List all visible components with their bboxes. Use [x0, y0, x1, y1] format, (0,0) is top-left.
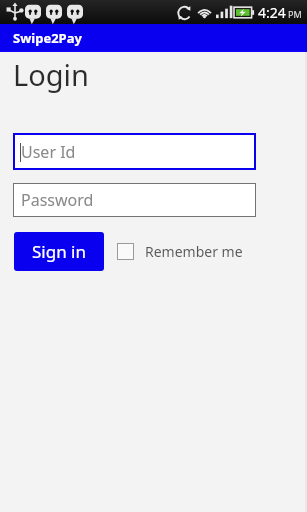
staticText: Swipe2Pay [13, 29, 82, 47]
staticText: User Id [21, 141, 76, 163]
staticText: Sign in [32, 240, 86, 263]
staticText: PM [288, 8, 302, 20]
staticText: 4:24 [258, 3, 286, 22]
staticText: Password [21, 189, 94, 211]
button[interactable]: Swipe2Pay [0, 24, 307, 51]
button[interactable]: Remember me [117, 242, 243, 261]
staticText: Remember me [145, 242, 243, 261]
button[interactable]: Sign in [14, 232, 104, 271]
staticText: Login [13, 55, 89, 94]
button[interactable]: Password [13, 183, 256, 217]
button[interactable]: User Id [13, 133, 256, 170]
